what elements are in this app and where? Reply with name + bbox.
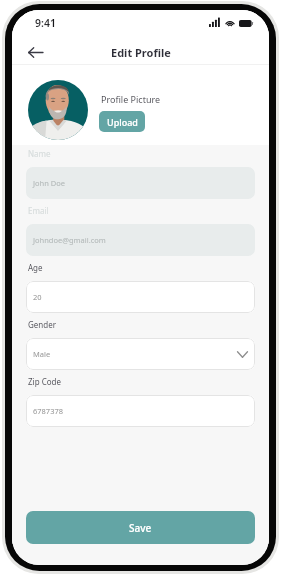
button[interactable]: John Doe	[26, 167, 255, 199]
button[interactable]: 6787378	[26, 395, 255, 427]
staticText: John Doe	[33, 178, 66, 188]
staticText: Age	[28, 262, 43, 273]
button[interactable]: Save	[26, 511, 255, 544]
button[interactable]: 20	[26, 281, 255, 313]
staticText: Name	[28, 148, 51, 159]
button[interactable]: Back	[22, 39, 48, 65]
staticText: Upload	[107, 116, 138, 128]
button[interactable]: Johndoe@gmail.com	[26, 224, 255, 256]
staticText: Save	[129, 521, 152, 535]
staticText: 9:41	[35, 16, 56, 30]
staticText: 20	[33, 292, 42, 302]
staticText: Zip Code	[28, 376, 61, 387]
button[interactable]: Male	[26, 338, 255, 370]
staticText: 6787378	[33, 406, 64, 416]
staticText: Profile Picture	[101, 93, 161, 105]
button[interactable]: Upload	[99, 111, 145, 132]
staticText: Email	[28, 205, 49, 216]
staticText: Gender	[28, 319, 57, 330]
staticText: Male	[33, 349, 51, 359]
staticText: Johndoe@gmail.com	[33, 235, 106, 245]
staticText: Edit Profile	[111, 45, 171, 60]
